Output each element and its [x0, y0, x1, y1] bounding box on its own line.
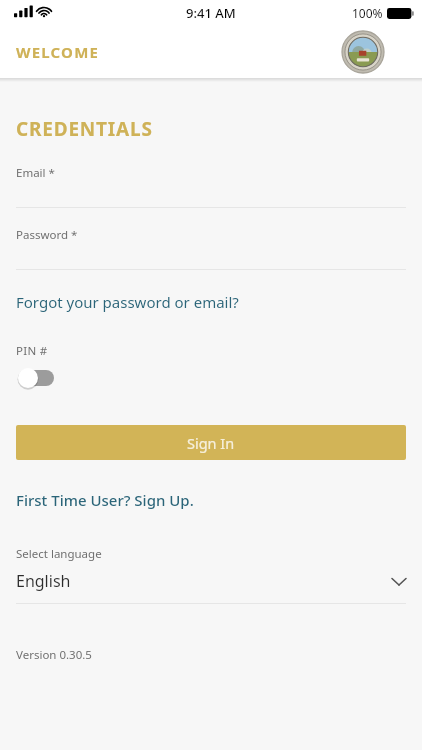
other: State seal [342, 31, 384, 73]
button[interactable]: English [16, 568, 406, 604]
staticText: 9:41 AM [186, 4, 236, 22]
staticText: Password * [16, 227, 78, 243]
staticText: Select language [16, 546, 102, 562]
staticText: Email * [16, 165, 55, 181]
staticText: Forgot your password or email? [16, 292, 239, 312]
staticText: PIN # [16, 343, 48, 359]
staticText: CREDENTIALS [16, 116, 153, 142]
staticText: Version 0.30.5 [16, 647, 92, 663]
staticText: First Time User? Sign Up. [16, 490, 194, 510]
button[interactable]: Email * [16, 165, 406, 208]
button[interactable]: Toggle PIN sign in [16, 366, 68, 390]
staticText: 100% [352, 5, 383, 21]
staticText: WELCOME [16, 42, 100, 62]
staticText: English [16, 570, 71, 592]
staticText: Sign In [187, 433, 235, 453]
button[interactable]: Password * [16, 227, 406, 270]
button[interactable]: Sign In [16, 425, 406, 460]
button[interactable]: First Time User? Sign Up. [16, 487, 406, 513]
button[interactable]: Forgot your password or email? [16, 289, 406, 315]
other: Expand language list [392, 577, 406, 586]
